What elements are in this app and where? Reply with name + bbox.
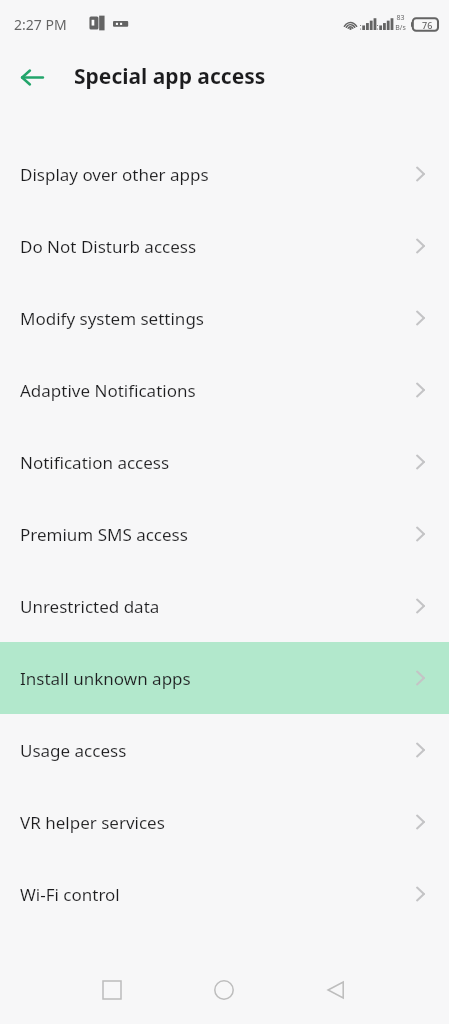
button[interactable]: Home bbox=[190, 956, 258, 1024]
button[interactable]: Modify system settings bbox=[0, 282, 449, 354]
staticText: Premium SMS access bbox=[20, 523, 188, 546]
button[interactable]: Back bbox=[302, 956, 370, 1024]
staticText: Usage access bbox=[20, 739, 127, 762]
staticText: B/s bbox=[395, 23, 406, 33]
button[interactable]: Back bbox=[8, 53, 56, 101]
button[interactable]: Adaptive Notifications bbox=[0, 354, 449, 426]
button[interactable]: Usage access bbox=[0, 714, 449, 786]
staticText: 83 bbox=[396, 13, 405, 23]
staticText: Unrestricted data bbox=[20, 595, 160, 618]
staticText: Install unknown apps bbox=[20, 667, 191, 690]
button[interactable]: Unrestricted data bbox=[0, 570, 449, 642]
staticText: 76 bbox=[422, 19, 433, 31]
staticText: Modify system settings bbox=[20, 307, 204, 330]
button[interactable]: Display over other apps bbox=[0, 138, 449, 210]
button[interactable]: VR helper services bbox=[0, 786, 449, 858]
staticText: Special app access bbox=[74, 62, 266, 91]
button[interactable]: Notification access bbox=[0, 426, 449, 498]
staticText: Display over other apps bbox=[20, 163, 209, 186]
button[interactable]: Do Not Disturb access bbox=[0, 210, 449, 282]
button[interactable]: Wi-Fi control bbox=[0, 858, 449, 930]
button[interactable]: Recent apps bbox=[78, 956, 146, 1024]
staticText: 2:27 PM bbox=[14, 15, 67, 34]
staticText: Notification access bbox=[20, 451, 170, 474]
staticText: Do Not Disturb access bbox=[20, 235, 197, 258]
staticText: Wi-Fi control bbox=[20, 883, 120, 906]
staticText: VR helper services bbox=[20, 811, 165, 834]
staticText: Adaptive Notifications bbox=[20, 379, 196, 402]
button[interactable]: Premium SMS access bbox=[0, 498, 449, 570]
button[interactable]: Install unknown apps bbox=[0, 642, 449, 714]
